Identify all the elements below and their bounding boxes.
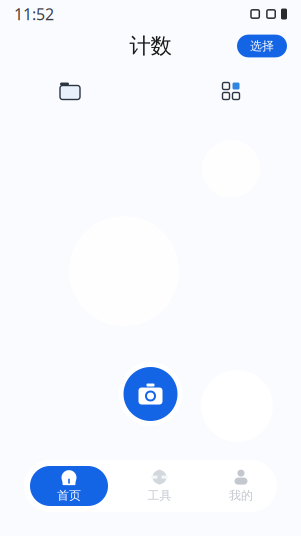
staticText: 工具 [147, 488, 171, 503]
staticText: 我的 [229, 488, 253, 503]
staticText: 11:52 [14, 3, 54, 25]
button[interactable]: Folders [50, 74, 90, 108]
button[interactable]: 我的 [211, 466, 271, 506]
staticText: 计数 [129, 33, 171, 59]
button[interactable]: Grid view [211, 74, 251, 108]
button[interactable]: 首页 [30, 466, 108, 506]
button[interactable]: Camera [118, 362, 182, 426]
button[interactable]: 选择 [237, 35, 287, 57]
button[interactable]: 工具 [129, 466, 189, 506]
staticText: 首页 [57, 488, 81, 503]
staticText: 选择 [250, 39, 274, 53]
